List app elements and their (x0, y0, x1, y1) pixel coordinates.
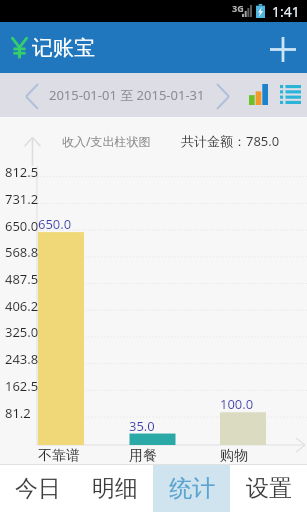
button[interactable]: 明细 (76, 465, 153, 512)
staticText: 406.2 (5, 297, 39, 313)
staticText: 不靠谱 (38, 447, 80, 464)
button[interactable]: Add record (258, 22, 307, 73)
staticText: 731.2 (5, 190, 39, 206)
staticText: 162.5 (5, 377, 39, 393)
staticText: 购物 (220, 447, 248, 464)
staticText: 568.8 (5, 243, 39, 259)
staticText: 650.0 (38, 215, 72, 232)
button[interactable]: Chart view (240, 73, 276, 117)
button[interactable]: 今日 (0, 465, 76, 512)
staticText: 今日 (15, 474, 61, 503)
staticText: 812.5 (5, 163, 39, 179)
button[interactable]: 统计 (153, 465, 230, 512)
staticText: 325.0 (5, 323, 39, 339)
staticText: 35.0 (129, 417, 155, 434)
button[interactable]: Previous period (18, 73, 46, 117)
staticText: 用餐 (129, 447, 157, 464)
staticText: 收入/支出柱状图 (62, 133, 151, 149)
staticText: 统计 (169, 474, 215, 503)
staticText: 487.5 (5, 270, 39, 286)
button[interactable]: Next period (209, 73, 237, 117)
staticText: 2015-01-01 至 2015-01-31 (49, 86, 205, 104)
staticText: 明细 (92, 474, 138, 503)
staticText: 共计金额：785.0 (181, 132, 280, 149)
staticText: 650.0 (5, 217, 39, 233)
button[interactable]: 设置 (230, 465, 307, 512)
staticText: 1:41 (272, 2, 300, 21)
button[interactable]: List view (272, 73, 307, 117)
staticText: 81.2 (5, 404, 31, 420)
staticText: 记账宝 (32, 35, 95, 61)
staticText: 3G (232, 2, 244, 12)
button[interactable]: 2015-01-01 至 2015-01-31 (49, 73, 215, 117)
staticText: 100.0 (220, 395, 254, 412)
staticText: 设置 (246, 474, 292, 503)
staticText: 243.8 (5, 350, 39, 366)
